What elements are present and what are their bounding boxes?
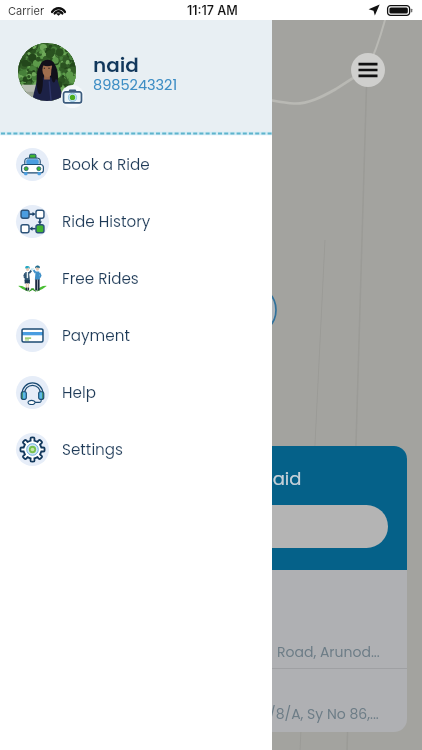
button[interactable]: Ride History: [0, 193, 272, 250]
staticText: Road, Arunod...: [277, 642, 380, 662]
button[interactable]: Free Rides: [0, 250, 272, 307]
staticText: Book a Ride: [62, 154, 150, 175]
staticText: 8985243321: [93, 75, 178, 95]
staticText: Help: [62, 382, 96, 403]
button[interactable]: Book a Ride: [0, 136, 272, 193]
staticText: Free Rides: [62, 268, 139, 289]
button[interactable]: Change profile photo: [61, 85, 84, 108]
staticText: Carrier: [8, 4, 45, 17]
staticText: 11:17 AM: [187, 3, 238, 18]
staticText: Payment: [62, 325, 130, 346]
button[interactable]: Settings: [0, 421, 272, 478]
button[interactable]: Payment: [0, 307, 272, 364]
staticText: Welcome naid: [171, 466, 302, 491]
staticText: Ride History: [62, 211, 151, 232]
button[interactable]: Help: [0, 364, 272, 421]
staticText: /8/A, Sy No 86,...: [269, 704, 379, 724]
button[interactable]: Open navigation menu: [351, 53, 385, 87]
button[interactable]: [137, 505, 388, 548]
staticText: naid: [93, 51, 139, 79]
staticText: Settings: [62, 439, 124, 460]
